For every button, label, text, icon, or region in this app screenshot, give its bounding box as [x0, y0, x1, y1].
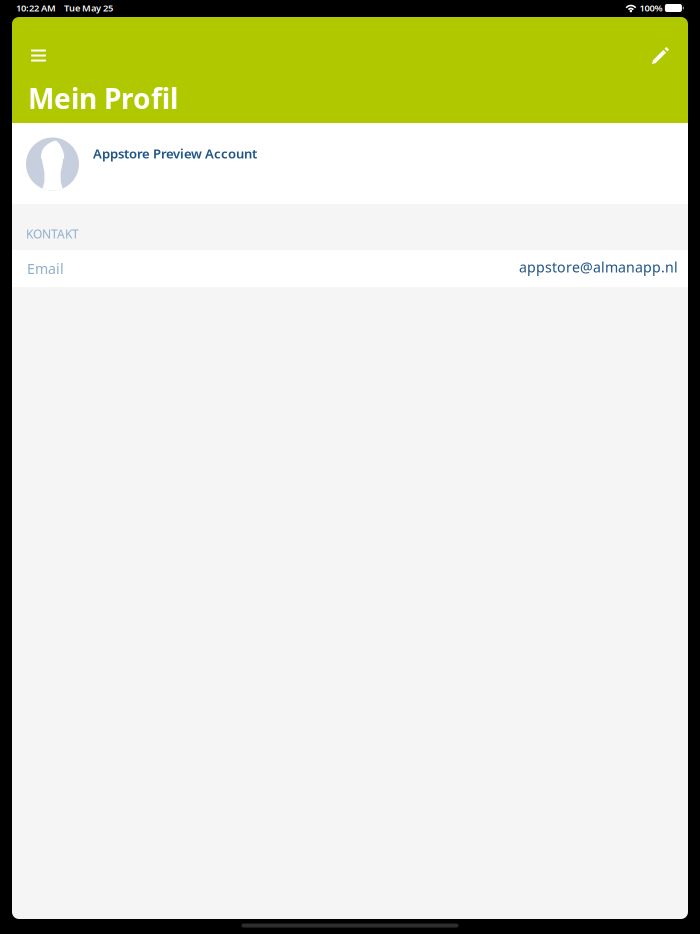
staticText: appstore@almanapp.nl	[519, 257, 678, 277]
button[interactable]: Menü	[12, 37, 60, 73]
staticText: 100%	[639, 2, 662, 14]
button[interactable]: Email	[12, 250, 688, 287]
staticText: Appstore Preview Account	[93, 144, 257, 162]
staticText: Email	[27, 259, 64, 278]
staticText: Mein Profil	[28, 79, 178, 117]
staticText: KONTAKT	[26, 226, 79, 242]
staticText: 10:22 AM	[16, 2, 56, 14]
button[interactable]: Profil bearbeiten	[638, 37, 688, 74]
staticText: Tue May 25	[64, 2, 113, 14]
button[interactable]: Appstore Preview Account	[12, 123, 688, 204]
